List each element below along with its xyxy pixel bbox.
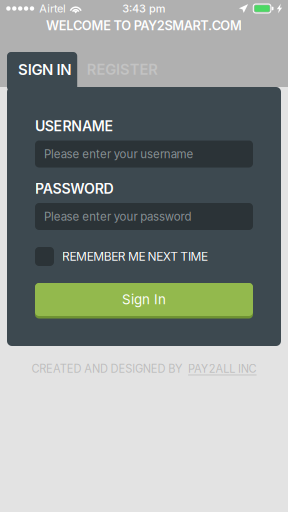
- staticText: REMEMBER ME NEXT TIME: [62, 249, 208, 264]
- button[interactable]: REGISTER: [77, 52, 170, 87]
- staticText: WELCOME TO PAY2SMART.COM: [46, 18, 242, 33]
- staticText: 3:43 pm: [122, 2, 166, 15]
- staticText: SIGN IN: [18, 60, 71, 79]
- staticText: Please enter your password: [44, 210, 191, 223]
- button[interactable]: Sign In: [35, 283, 253, 318]
- staticText: CREATED AND DESIGNED BY: [31, 362, 183, 375]
- staticText: PAY2ALL INC: [188, 362, 257, 375]
- button[interactable]: REMEMBER ME NEXT TIME: [35, 247, 253, 266]
- staticText: Sign In: [122, 291, 166, 307]
- button[interactable]: SIGN IN: [7, 52, 77, 87]
- button[interactable]: PAY2ALL INC: [188, 362, 257, 375]
- staticText: PASSWORD: [35, 180, 114, 197]
- staticText: Airtel: [39, 2, 66, 15]
- staticText: Please enter your username: [44, 147, 193, 161]
- staticText: REGISTER: [87, 61, 158, 78]
- staticText: USERNAME: [35, 117, 114, 134]
